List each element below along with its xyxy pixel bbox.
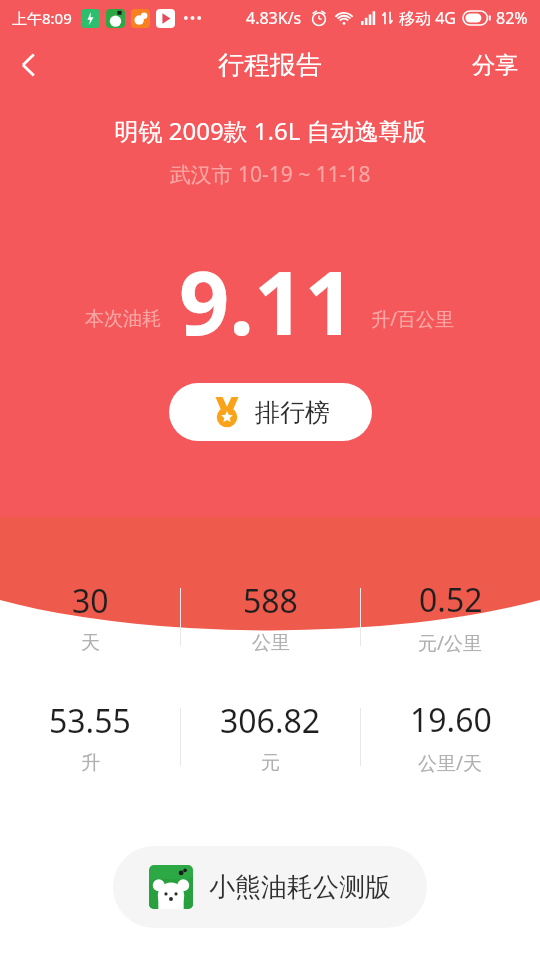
button[interactable]: 排行榜 <box>169 383 372 441</box>
staticText: 移动 4G <box>399 7 456 29</box>
staticText: 排行榜 <box>255 397 330 428</box>
staticText: 53.55 <box>49 699 131 743</box>
button[interactable]: 53.55 <box>0 699 180 775</box>
button[interactable]: 返回 <box>0 36 58 94</box>
staticText: 行程报告 <box>218 49 322 82</box>
staticText: 升 <box>81 751 100 775</box>
staticText: 588 <box>243 579 298 623</box>
staticText: 本次油耗 <box>85 307 161 331</box>
staticText: 上午8:09 <box>12 8 72 28</box>
staticText: 306.82 <box>220 699 321 743</box>
staticText: 明锐 2009款 1.6L 自动逸尊版 <box>114 114 427 147</box>
button[interactable]: 306.82 <box>181 699 360 775</box>
staticText: 19.60 <box>410 698 492 742</box>
button[interactable]: 小熊油耗公测版 <box>113 846 427 928</box>
staticText: 小熊油耗公测版 <box>209 871 391 904</box>
staticText: 武汉市 10-19 ~ 11-18 <box>169 160 371 189</box>
staticText: 分享 <box>472 51 518 80</box>
staticText: 9.11 <box>179 241 355 361</box>
staticText: 公里/天 <box>418 750 483 776</box>
button[interactable]: 30 <box>0 579 180 655</box>
staticText: 4.83K/s <box>246 7 302 29</box>
staticText: 天 <box>81 631 100 655</box>
staticText: 30 <box>72 579 109 623</box>
button[interactable]: 0.52 <box>361 578 540 656</box>
staticText: 82% <box>496 7 528 29</box>
staticText: 0.52 <box>419 578 483 622</box>
staticText: 元 <box>261 751 280 775</box>
button[interactable]: 588 <box>181 579 360 655</box>
staticText: 公里 <box>252 631 290 655</box>
button[interactable]: 分享 <box>450 37 540 94</box>
staticText: 升/百公里 <box>371 306 455 332</box>
button[interactable]: 19.60 <box>361 698 540 776</box>
staticText: 元/公里 <box>418 630 483 656</box>
